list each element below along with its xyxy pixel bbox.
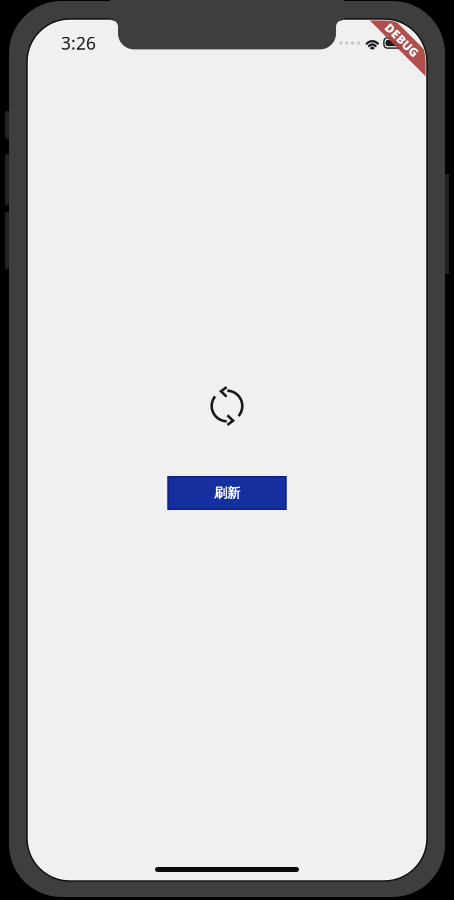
button[interactable]: 刷新 <box>167 476 286 510</box>
staticText: 3:26 <box>61 31 96 54</box>
staticText: 刷新 <box>214 485 240 501</box>
staticText: DEBUG <box>381 32 423 48</box>
